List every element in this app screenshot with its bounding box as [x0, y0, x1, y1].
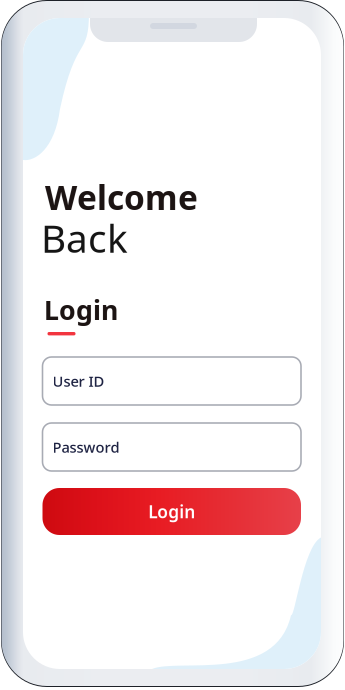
button[interactable]: User ID	[42, 357, 301, 405]
button[interactable]: Password	[42, 423, 301, 471]
staticText: User ID	[52, 371, 104, 391]
staticText: Password	[52, 437, 119, 457]
staticText: Back	[41, 212, 128, 263]
staticText: Welcome	[45, 175, 198, 219]
staticText: Login	[148, 500, 195, 523]
button[interactable]: Login	[42, 488, 301, 535]
staticText: Login	[44, 292, 118, 327]
